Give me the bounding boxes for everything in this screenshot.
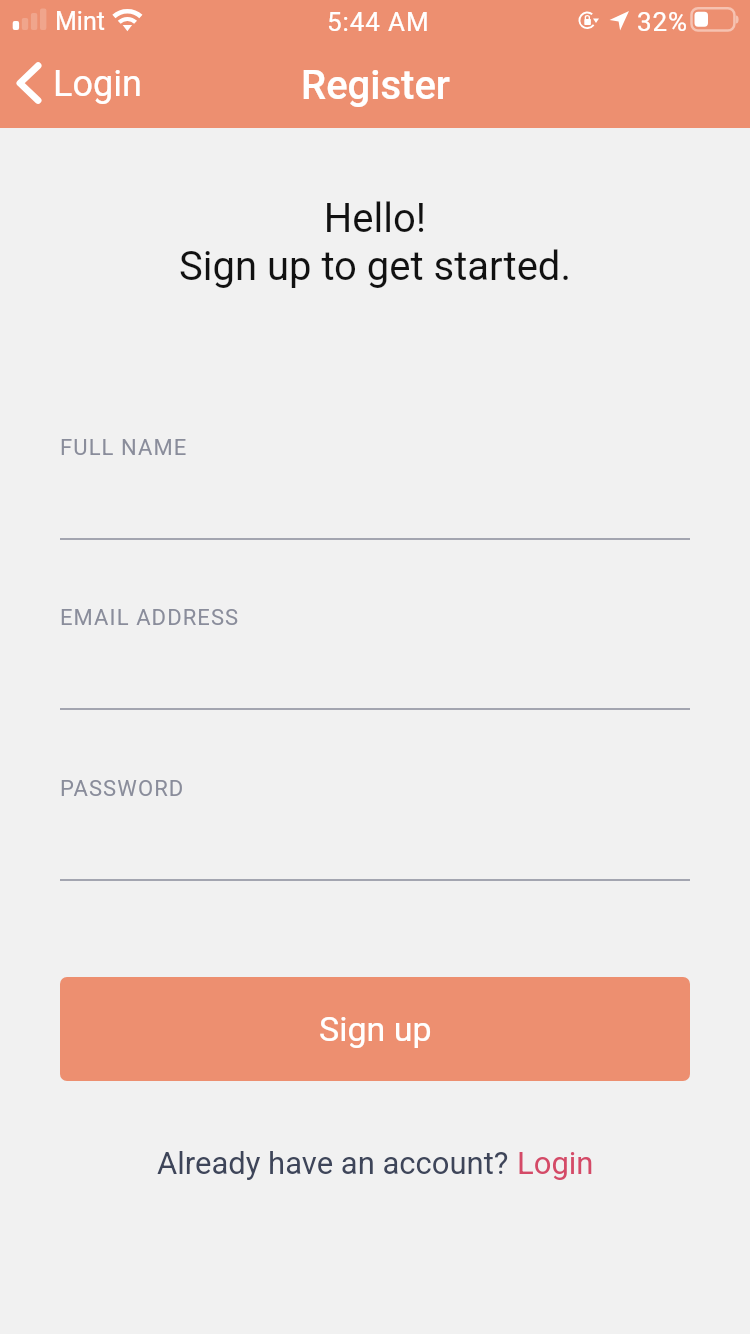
button[interactable]: Back to Login [6,54,151,112]
staticText: FULL NAME [60,435,188,461]
other: Rotation lock [574,7,602,35]
staticText: EMAIL ADDRESS [60,605,240,631]
button[interactable]: FULL NAME [0,435,750,541]
staticText: 32% [637,7,688,37]
button[interactable]: EMAIL ADDRESS [0,605,750,711]
other: Location services [607,8,633,34]
other: Cellular signal [10,6,50,32]
staticText: Mint [55,7,105,36]
staticText: Login [53,63,142,105]
button[interactable]: Login [517,1145,594,1181]
staticText: Login [517,1145,594,1181]
other: Battery 32 percent [688,6,744,34]
staticText: Already have an account? [157,1145,517,1181]
staticText: Sign up [319,1009,432,1049]
staticText: 5:44 AM [327,7,430,37]
other: Wi-Fi [105,4,151,36]
button[interactable]: PASSWORD [0,776,750,882]
staticText: Hello! Sign up to get started. [0,195,750,290]
button[interactable]: Sign up [60,977,690,1081]
staticText: Register [301,62,450,109]
staticText: PASSWORD [60,776,185,802]
